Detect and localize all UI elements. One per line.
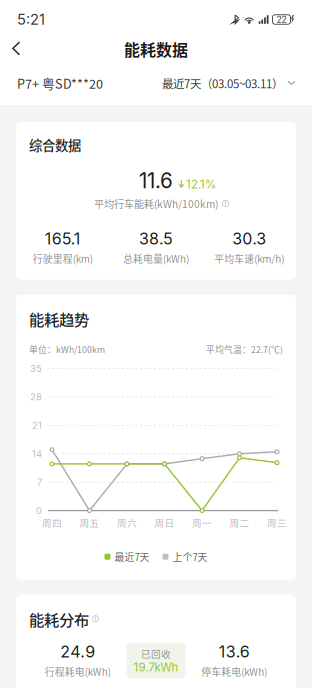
staticText: 0 [36,505,42,516]
staticText: 单位：kWh/100km [29,343,105,355]
staticText: 7 [37,476,42,488]
staticText: 35 [30,363,42,374]
staticText: 周三 [267,516,287,529]
staticText: 22 [276,14,286,25]
staticText: 上个7天 [172,550,207,564]
button[interactable]: 最近7天（03.05~03.11） [162,69,295,97]
staticText: 24.9 [60,642,95,661]
staticText: 综合数据 [29,135,81,154]
staticText: 平均气温：22.7(℃) [206,343,283,355]
staticText: 5:21 [17,11,45,28]
staticText: 周一 [192,516,212,529]
staticText: 已回收 [141,646,171,660]
staticText: 周五 [79,516,99,529]
staticText: 能耗数据 [124,37,188,61]
staticText: 21 [32,420,42,431]
staticText: 28 [30,391,42,403]
staticText: 平均车速(km/h) [214,251,284,266]
staticText: 能耗趋势 [29,308,89,330]
staticText: 30.3 [232,229,266,248]
staticText: 13.6 [219,642,250,661]
staticText: 行驶里程(km) [33,251,93,266]
staticText: 最近7天（03.05~03.11） [162,75,283,91]
staticText: 周二 [229,516,249,529]
staticText: P7+ 粤SD***20 [17,74,103,92]
staticText: 周日 [154,516,174,529]
staticText: 行程耗电(kWh) [45,664,111,679]
staticText: 最近7天 [114,550,149,564]
staticText: 停车耗电(kWh) [201,664,267,679]
button[interactable]: P7+ 粤SD***20 [17,68,103,98]
staticText: 周六 [117,516,137,529]
staticText: 14 [32,448,42,459]
button[interactable]: 返回 [0,38,33,60]
staticText: 能耗分布 [29,608,89,630]
staticText: 周四 [42,516,62,529]
staticText: 19.7kWh [133,660,178,674]
staticText: 总耗电量(kWh) [123,251,189,266]
staticText: 12.1% [186,177,216,191]
staticText: 38.5 [139,229,173,248]
staticText: 11.6 [139,168,173,193]
staticText: 165.1 [45,229,81,248]
staticText: 平均行车能耗(kWh/100km) [94,196,218,211]
